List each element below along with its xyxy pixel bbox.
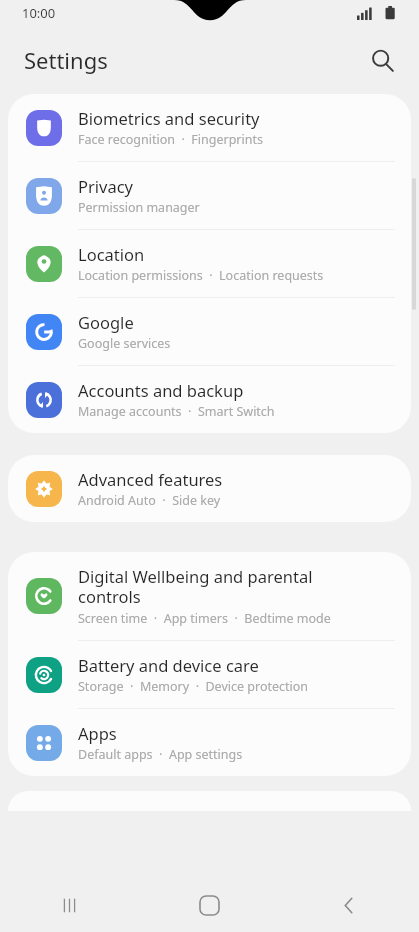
button[interactable]: Recents <box>0 878 139 932</box>
staticText: Default apps · App settings <box>78 746 243 763</box>
button[interactable]: Home <box>139 878 279 932</box>
button[interactable]: Search <box>359 37 405 83</box>
staticText: Manage accounts · Smart Switch <box>78 403 275 420</box>
staticText: Android Auto · Side key <box>78 492 221 509</box>
button[interactable]: Advanced features <box>8 455 411 522</box>
staticText: Biometrics and security <box>78 107 260 129</box>
button[interactable]: Accounts and backup <box>8 366 411 433</box>
staticText: Google <box>78 311 134 333</box>
staticText: Screen time · App timers · Bedtime mode <box>78 610 331 627</box>
button[interactable]: Location <box>8 230 411 297</box>
staticText: 10:00 <box>22 4 56 22</box>
button[interactable]: Biometrics and security <box>8 94 411 161</box>
staticText: Apps <box>78 722 117 744</box>
button[interactable]: Google <box>8 298 411 365</box>
staticText: Face recognition · Fingerprints <box>78 131 263 148</box>
staticText: Settings <box>24 45 108 75</box>
staticText: Digital Wellbeing and parental controls <box>78 565 313 608</box>
staticText: Privacy <box>78 175 134 197</box>
staticText: Location permissions · Location requests <box>78 267 324 284</box>
button[interactable]: Back <box>279 878 419 932</box>
staticText: Storage · Memory · Device protection <box>78 678 309 695</box>
button[interactable]: Digital Wellbeing and parental controls <box>8 552 411 640</box>
staticText: Advanced features <box>78 468 223 490</box>
staticText: Accounts and backup <box>78 379 244 401</box>
staticText: Google services <box>78 335 171 352</box>
staticText: Permission manager <box>78 199 200 216</box>
button[interactable]: Battery and device care <box>8 641 411 708</box>
staticText: Location <box>78 243 145 265</box>
staticText: Battery and device care <box>78 654 259 676</box>
button[interactable]: Apps <box>8 709 411 776</box>
button[interactable]: Privacy <box>8 162 411 229</box>
